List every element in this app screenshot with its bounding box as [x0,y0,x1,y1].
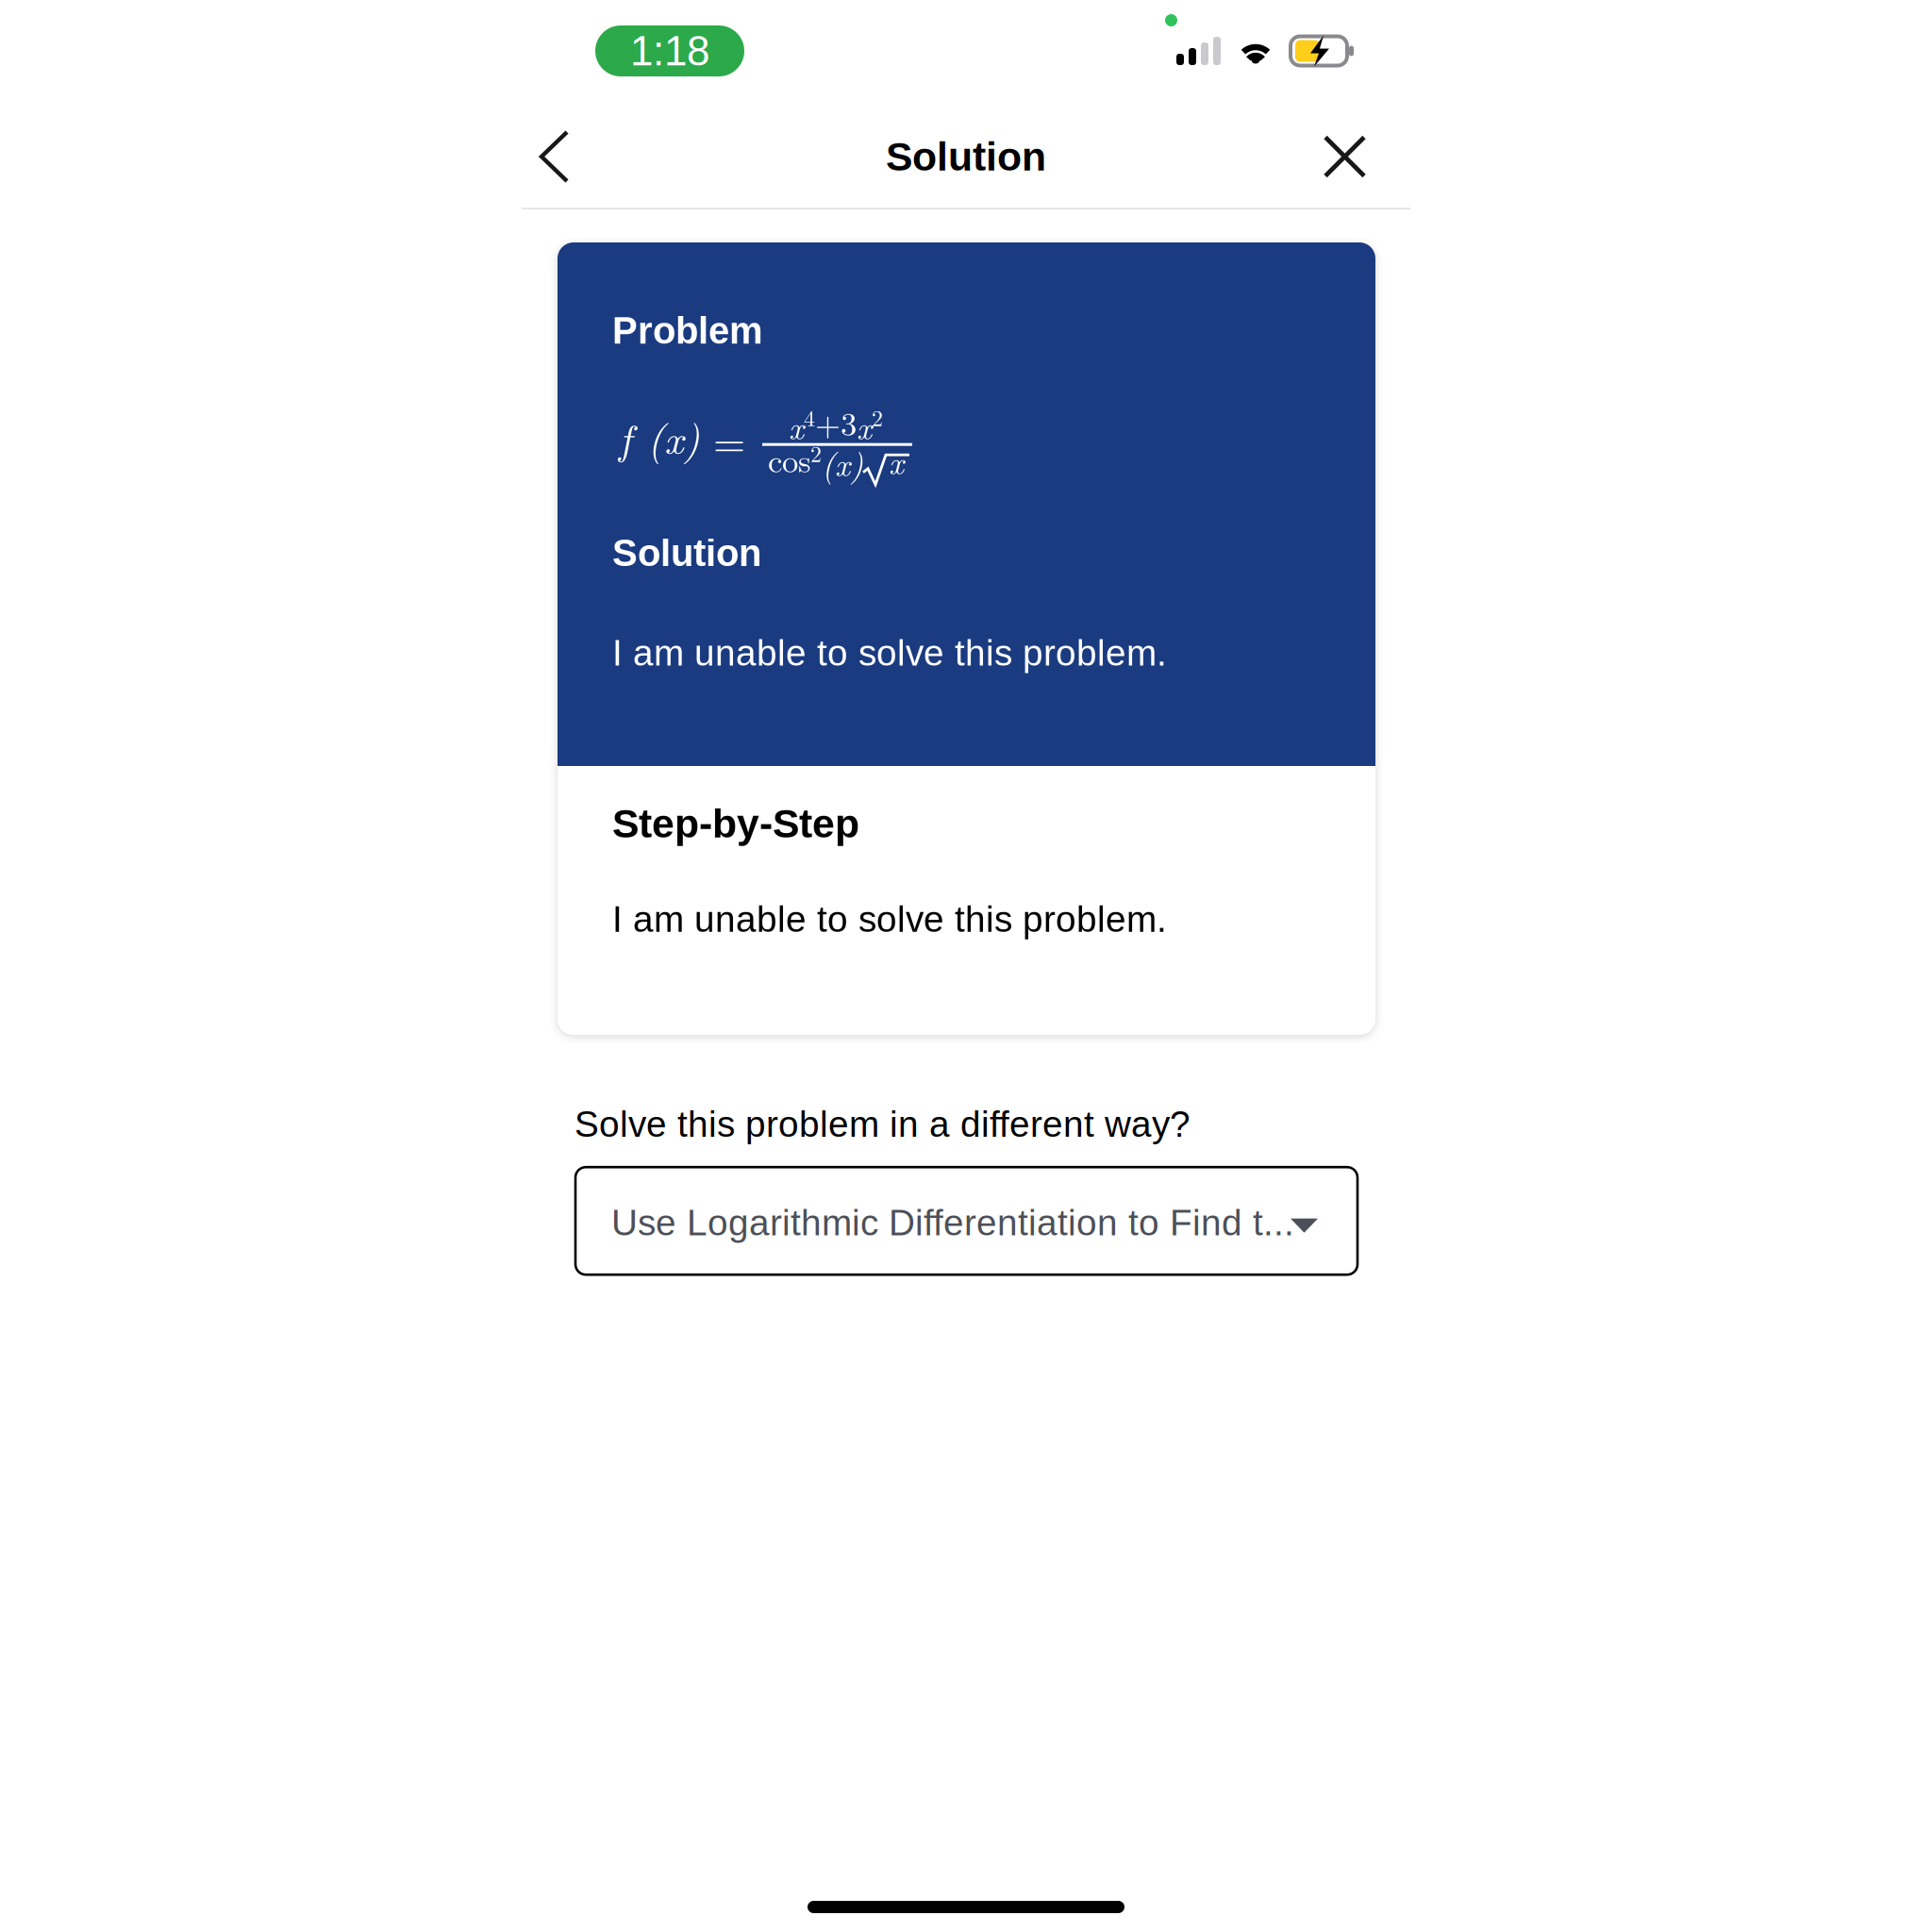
staticText: = [713,410,745,469]
staticText: Problem [612,309,763,352]
staticText: 4 [804,401,815,433]
staticText: 2 [810,436,822,469]
staticText: x [889,437,904,484]
staticText: +3 [815,399,857,445]
staticText: Solution [886,134,1046,179]
button[interactable]: Use Logarithmic Differentiation to Find … [575,1167,1357,1275]
staticText: 1:18 [630,28,709,74]
staticText: Step-by-Step [612,801,859,846]
staticText: (x) [822,439,863,486]
button[interactable]: Back [520,114,614,199]
staticText: Solution [612,532,761,574]
staticText: Use Logarithmic Differentiation to Find … [611,1202,1294,1243]
button[interactable]: Close [1293,114,1412,199]
staticText: f (x) [619,407,700,466]
staticText: Solve this problem in a different way? [575,1104,1191,1144]
staticText: x [789,403,804,449]
staticText: I am unable to solve this problem. [612,899,1167,939]
staticText: cos [768,436,811,482]
staticText: 2 [872,401,883,433]
staticText: x [857,403,872,449]
staticText: I am unable to solve this problem. [612,632,1167,673]
